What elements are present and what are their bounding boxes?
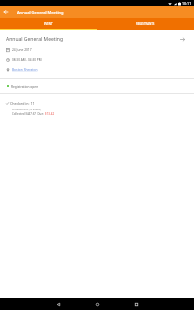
staticText: 10:11 [182, 1, 192, 6]
staticText: 08:30 AM - 04:30 PM [12, 58, 42, 62]
button[interactable]: Back [52, 298, 64, 310]
staticText: 20 Registrants (12 guests) [12, 107, 41, 110]
staticText: Collected $447.67 Due: [12, 112, 45, 116]
button[interactable]: REGISTRANTS [97, 18, 194, 30]
button[interactable]: Open event [176, 33, 188, 45]
button[interactable]: Home [91, 298, 103, 310]
button[interactable]: Back [0, 6, 12, 18]
staticText: Annual General Meeting [6, 36, 64, 43]
button[interactable]: EVENT [0, 18, 97, 30]
staticText: Checked in: 11 [10, 101, 35, 106]
staticText: EVENT [44, 22, 53, 26]
staticText: 24 June 2017 [12, 48, 32, 52]
staticText: Annual General Meeting [17, 10, 64, 15]
staticText: Boston Sheraton [12, 68, 38, 72]
staticText: Registration open [11, 85, 39, 89]
button[interactable]: Recent apps [130, 298, 142, 310]
staticText: $13.42 [45, 112, 55, 116]
staticText: REGISTRANTS [136, 22, 155, 26]
